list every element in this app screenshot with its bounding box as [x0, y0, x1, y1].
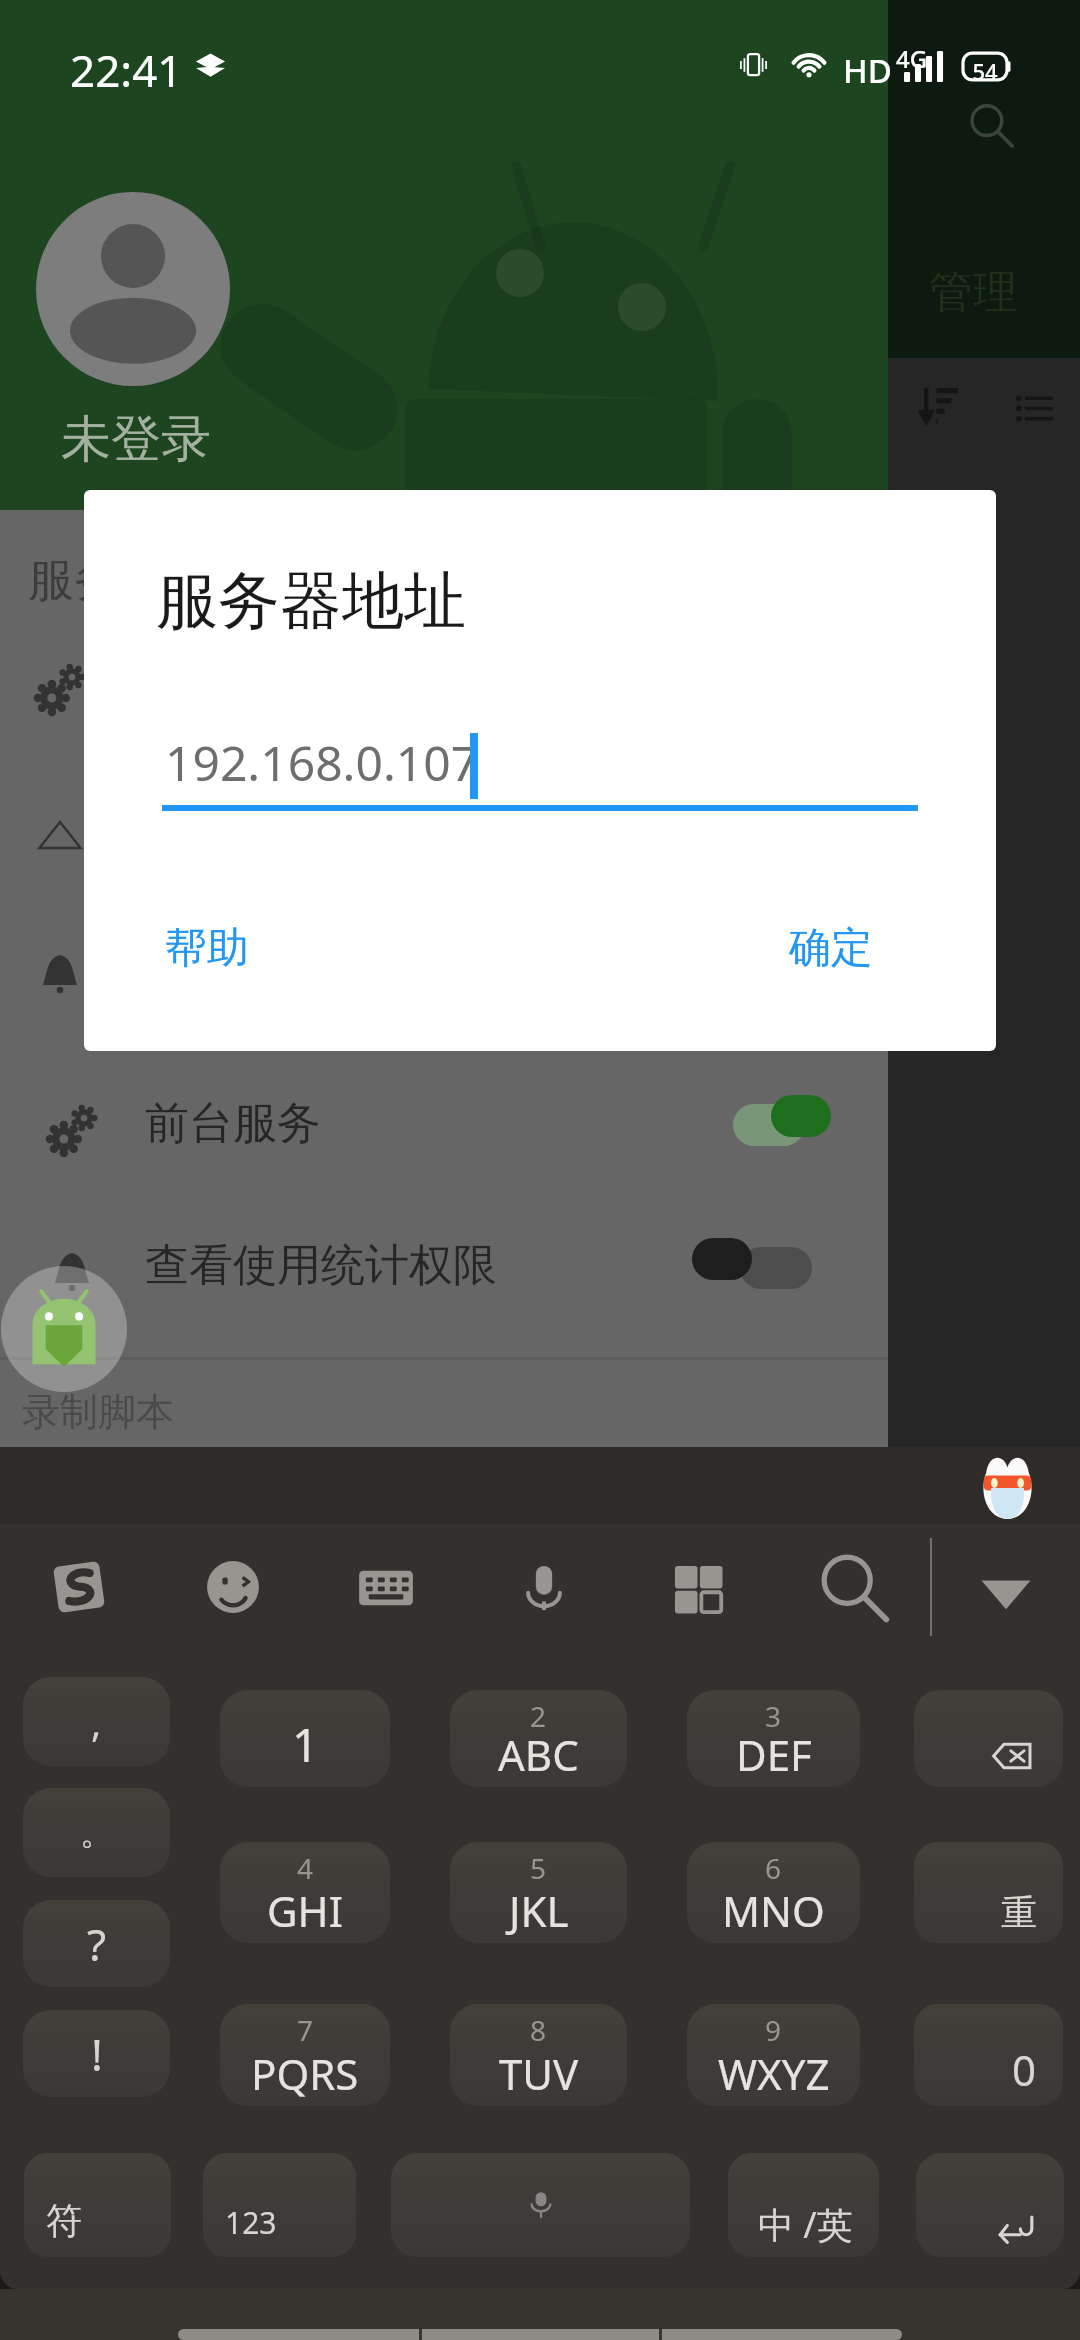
button[interactable]: Search: [804, 1539, 900, 1635]
staticText: ,: [91, 1696, 102, 1748]
button[interactable]: 9: [687, 2004, 860, 2106]
button[interactable]: 查看使用统计权限: [0, 1201, 888, 1341]
staticText: 5: [530, 1849, 547, 1887]
staticText: JKL: [509, 1882, 569, 1939]
button[interactable]: ,: [23, 1677, 170, 1766]
button[interactable]: Hide keyboard: [958, 1542, 1054, 1638]
button[interactable]: Record script: [1, 1266, 127, 1392]
staticText: ABC: [498, 1726, 579, 1783]
button[interactable]: 中 /英: [728, 2153, 879, 2257]
staticText: 重: [1001, 1890, 1037, 1935]
staticText: 7: [297, 2011, 314, 2049]
button[interactable]: 2: [450, 1690, 627, 1787]
button[interactable]: Enabled: [733, 1104, 833, 1146]
button[interactable]: 7: [220, 2004, 390, 2106]
staticText: 8: [530, 2011, 547, 2049]
button[interactable]: 1: [220, 1690, 390, 1787]
button[interactable]: Voice input: [496, 1539, 592, 1635]
button[interactable]: Backspace: [914, 1690, 1063, 1787]
staticText: DEF: [736, 1726, 812, 1783]
button[interactable]: 符: [24, 2153, 171, 2257]
button[interactable]: Space: [391, 2153, 690, 2257]
staticText: 未登录: [61, 408, 211, 471]
button[interactable]: Search: [939, 74, 1035, 170]
button[interactable]: Account avatar: [36, 192, 230, 386]
staticText: 2: [530, 1697, 547, 1735]
staticText: HD: [843, 48, 892, 93]
staticText: ?: [87, 1914, 107, 1974]
button[interactable]: Sogou input: [31, 1539, 127, 1635]
staticText: 帮助: [165, 922, 249, 975]
button[interactable]: ?: [23, 1900, 170, 1987]
staticText: 9: [765, 2011, 782, 2049]
staticText: 123: [225, 2202, 277, 2243]
staticText: 录制脚本: [22, 1388, 174, 1436]
staticText: TUV: [499, 2045, 579, 2102]
staticText: 服务器地址: [156, 562, 466, 640]
button[interactable]: 。: [23, 1788, 170, 1877]
staticText: 服务: [28, 552, 120, 610]
staticText: 6: [765, 1849, 782, 1887]
button[interactable]: Disabled: [712, 1247, 812, 1289]
staticText: MNO: [722, 1882, 825, 1939]
button[interactable]: Enter: [916, 2153, 1064, 2257]
staticText: 1: [292, 1713, 319, 1776]
button[interactable]: 确定: [771, 902, 891, 994]
staticText: 符: [46, 2198, 82, 2243]
button[interactable]: Apps: [650, 1539, 746, 1635]
staticText: 。: [80, 1811, 114, 1854]
button[interactable]: 帮助: [147, 902, 267, 994]
staticText: 查看使用统计权限: [145, 1238, 497, 1293]
staticText: 4G: [896, 42, 928, 75]
button[interactable]: 0: [914, 2004, 1063, 2106]
staticText: 4: [297, 1849, 314, 1887]
staticText: 确定: [789, 922, 873, 975]
button[interactable]: Sort: [890, 360, 984, 454]
staticText: 22:41: [70, 40, 183, 100]
staticText: WXYZ: [718, 2045, 830, 2102]
staticText: 前台服务: [145, 1096, 321, 1151]
staticText: 192.168.0.107: [165, 730, 479, 795]
button[interactable]: List view: [988, 360, 1080, 454]
button[interactable]: 123: [203, 2153, 356, 2257]
staticText: 0: [1012, 2041, 1037, 2098]
button[interactable]: 5: [450, 1842, 627, 1943]
button[interactable]: Assistant: [977, 1453, 1038, 1519]
button[interactable]: 3: [687, 1690, 860, 1787]
button[interactable]: Keyboard layout: [338, 1539, 434, 1635]
button[interactable]: 前台服务: [0, 1059, 888, 1199]
button[interactable]: !: [23, 2010, 170, 2097]
button[interactable]: 重: [914, 1842, 1063, 1943]
staticText: PQRS: [251, 2045, 359, 2102]
staticText: GHI: [267, 1882, 343, 1939]
button[interactable]: 4: [220, 1842, 390, 1943]
button[interactable]: Emoji: [185, 1539, 281, 1635]
button[interactable]: 8: [450, 2004, 627, 2106]
staticText: 3: [765, 1697, 782, 1735]
staticText: 中 /英: [758, 2200, 853, 2249]
button[interactable]: 6: [687, 1842, 860, 1943]
staticText: !: [91, 2024, 103, 2084]
staticText: 管理: [929, 265, 1017, 320]
staticText: 54: [962, 56, 1008, 86]
